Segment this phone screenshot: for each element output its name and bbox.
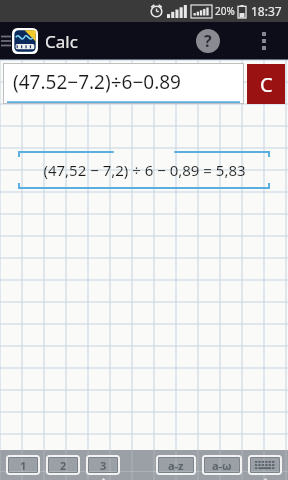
button[interactable]: Help xyxy=(193,26,223,56)
button[interactable]: 2 xyxy=(48,457,78,473)
staticText: 1 xyxy=(20,458,27,473)
staticText: ? xyxy=(204,30,212,52)
button[interactable]: 3 xyxy=(88,457,118,473)
staticText: C xyxy=(260,71,273,98)
staticText: a-ω xyxy=(212,458,232,473)
staticText: 3 xyxy=(100,458,107,473)
button[interactable]: (47.52−7.2)÷6−0.89 xyxy=(3,63,244,104)
staticText: 2 xyxy=(60,458,67,473)
button[interactable]: Keyboard xyxy=(250,457,280,473)
staticText: (47.52−7.2)÷6−0.89 xyxy=(13,69,181,95)
button[interactable]: a-ω xyxy=(204,457,240,473)
button[interactable]: a-z xyxy=(158,457,194,473)
button[interactable]: More options xyxy=(253,26,275,56)
button[interactable]: Calc xyxy=(12,28,78,54)
staticText: (47,52 − 7,2) ÷ 6 − 0,89 = 5,83 xyxy=(43,160,246,180)
staticText: 20% xyxy=(215,4,235,18)
staticText: Calc xyxy=(45,30,78,53)
button[interactable]: (47,52 − 7,2) ÷ 6 − 0,89 = 5,83 xyxy=(18,150,270,190)
other: Menu xyxy=(1,33,11,49)
button[interactable]: 1 xyxy=(8,457,38,473)
button[interactable]: C xyxy=(247,64,285,104)
staticText: 18:37 xyxy=(251,3,282,19)
staticText: a-z xyxy=(168,458,184,473)
